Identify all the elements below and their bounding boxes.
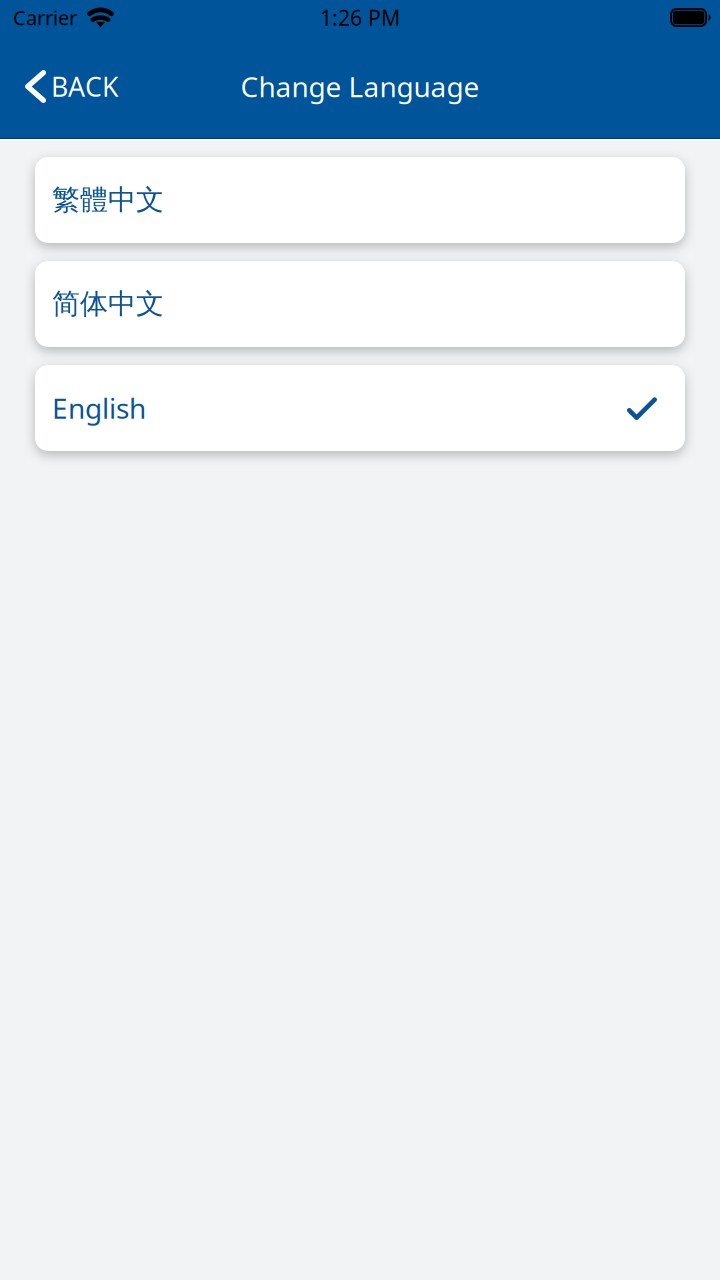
staticText: 繁體中文 [52,183,164,217]
button[interactable]: Back [0,53,133,119]
staticText: Carrier [13,4,77,31]
staticText: 1:26 PM [320,3,400,32]
staticText: BACK [51,69,119,104]
button[interactable]: English [35,365,685,451]
button[interactable]: 繁體中文 [35,157,685,243]
button[interactable]: 简体中文 [35,261,685,347]
staticText: Change Language [240,68,479,105]
staticText: English [52,389,146,427]
staticText: 简体中文 [52,287,164,321]
